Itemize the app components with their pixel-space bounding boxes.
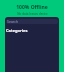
staticText: Search bbox=[7, 19, 19, 24]
button[interactable]: Search bbox=[6, 19, 58, 24]
staticText: Categories bbox=[6, 28, 28, 33]
staticText: 100% Offline bbox=[16, 4, 48, 11]
staticText: No data leaves device bbox=[17, 12, 48, 16]
